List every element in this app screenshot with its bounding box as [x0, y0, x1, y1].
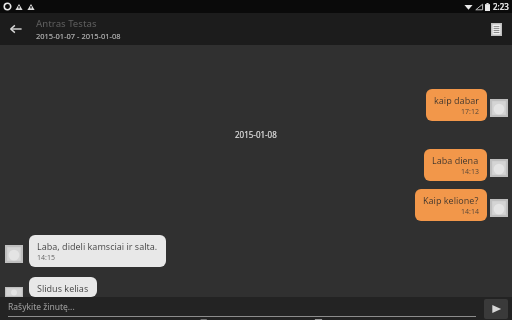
staticText: 14:15 [37, 253, 55, 263]
staticText: 2015-01-07 - 2015-01-08 [36, 31, 121, 41]
staticText: kaip dabar [434, 94, 479, 106]
button[interactable]: Back [0, 13, 32, 45]
staticText: Antras Testas [36, 17, 97, 30]
staticText: Rašykite žinutę... [8, 301, 75, 313]
staticText: 2:23 [493, 1, 509, 12]
button[interactable]: Kaip kelione? [415, 189, 487, 221]
other: Contact photo [5, 287, 23, 297]
staticText: Kaip kelione? [423, 194, 479, 206]
button[interactable]: Slidus kelias [29, 277, 97, 297]
staticText: Laba, dideli kamsciai ir salta. [37, 240, 158, 252]
staticText: 2015-01-08 [235, 129, 277, 140]
button[interactable]: Laba, dideli kamsciai ir salta. [29, 235, 166, 267]
staticText: Laba diena [432, 154, 479, 166]
button[interactable]: Rašykite žinutę... [8, 301, 476, 317]
other: Contact photo [490, 99, 508, 117]
other: Contact photo [490, 159, 508, 177]
staticText: 14:13 [461, 167, 479, 177]
other: Contact photo [490, 199, 508, 217]
other: Contact photo [5, 245, 23, 263]
staticText: Slidus kelias [37, 282, 89, 293]
button[interactable]: Laba diena [424, 149, 487, 181]
button[interactable]: Send [484, 299, 508, 319]
button[interactable]: kaip dabar [426, 89, 487, 121]
staticText: 17:12 [461, 107, 479, 117]
button[interactable]: Message list [480, 13, 512, 45]
staticText: 14:14 [461, 207, 479, 217]
